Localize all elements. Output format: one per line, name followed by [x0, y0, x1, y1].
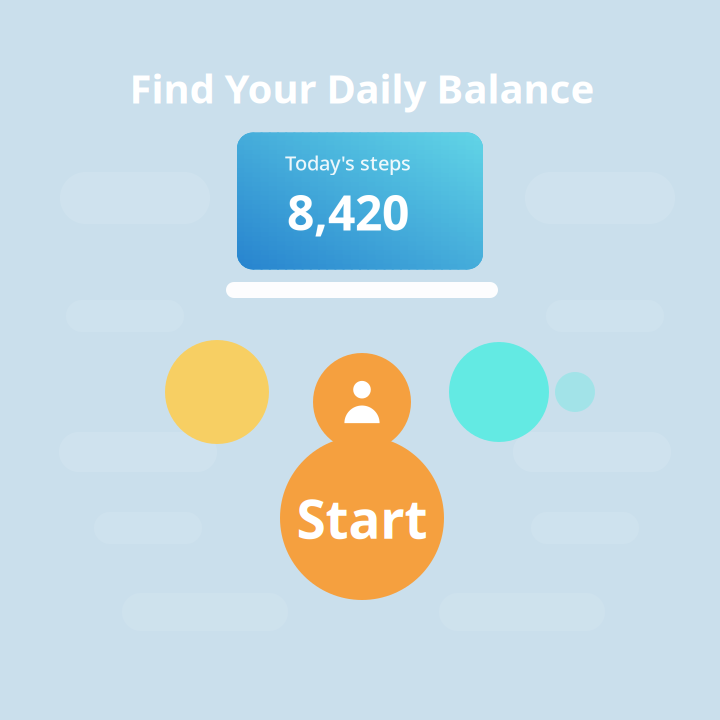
staticText: 8,420 [287, 180, 409, 244]
button[interactable]: Activity [313, 353, 411, 451]
button[interactable]: Today's steps [237, 132, 483, 269]
staticText: Find Your Daily Balance [129, 61, 594, 114]
button[interactable]: Energy [165, 340, 269, 444]
staticText: Today's steps [285, 149, 411, 176]
button[interactable]: Recovery [449, 342, 549, 442]
staticText: Start [296, 483, 427, 553]
button[interactable]: Start [280, 436, 444, 600]
